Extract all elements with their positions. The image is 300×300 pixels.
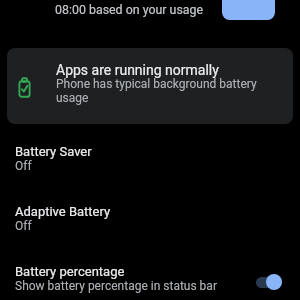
- staticText: Battery percentage: [15, 264, 125, 279]
- button[interactable]: [222, 0, 275, 20]
- staticText: Adaptive Battery: [15, 204, 111, 219]
- staticText: Phone has typical background battery usa…: [56, 77, 268, 105]
- staticText: Battery Saver: [15, 144, 92, 159]
- staticText: 08:00 based on your usage: [55, 2, 204, 17]
- button[interactable]: Battery percentage: [0, 248, 300, 300]
- button[interactable]: Adaptive Battery: [0, 188, 300, 248]
- staticText: Off: [15, 219, 32, 233]
- staticText: Off: [15, 159, 32, 173]
- button[interactable]: Apps are running normally: [7, 48, 293, 124]
- staticText: Show battery percentage in status bar: [15, 279, 217, 293]
- staticText: Apps are running normally: [56, 62, 219, 78]
- button[interactable]: Battery Saver: [0, 128, 300, 188]
